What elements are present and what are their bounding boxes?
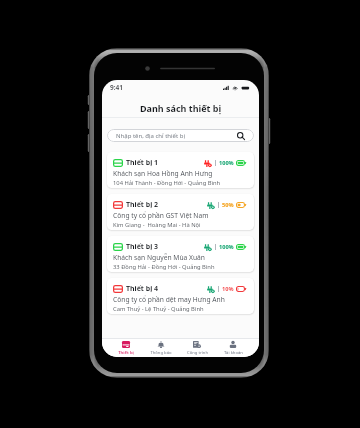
staticText: Khách sạn Nguyễn Mùa Xuân	[113, 253, 205, 262]
staticText: 50%	[222, 201, 234, 209]
staticText: Nhập tên, địa chỉ thiết bị	[116, 132, 185, 140]
staticText: 33 Đồng Hải - Đồng Hới - Quảng Bình	[113, 263, 215, 271]
staticText: Khách sạn Hoa Hồng Anh Hưng	[113, 169, 213, 178]
button[interactable]: Thiết bị 3	[107, 236, 254, 272]
button[interactable]: Thông báo	[143, 339, 179, 357]
button[interactable]: Nhập tên, địa chỉ thiết bị	[107, 129, 254, 142]
staticText: 104 Hải Thành - Đồng Hới - Quảng Bình	[113, 179, 221, 187]
staticText: 100%	[219, 159, 234, 167]
staticText: 100%	[219, 243, 234, 251]
staticText: Công ty cổ phần GST Việt Nam	[113, 211, 209, 220]
staticText: Tài khoản	[224, 350, 243, 356]
staticText: 9:41	[110, 83, 123, 92]
staticText: Thiết bị 3	[126, 242, 159, 252]
button[interactable]: Tài khoản	[215, 339, 251, 357]
button[interactable]: Thiết bị 2	[107, 194, 254, 230]
staticText: 10%	[222, 285, 234, 293]
button[interactable]: Thiết bị 1	[107, 152, 254, 188]
staticText: Cam Thuỷ - Lệ Thuỷ - Quảng Bình	[113, 305, 204, 313]
staticText: Công ty cổ phần dệt may Hưng Anh	[113, 295, 225, 304]
button[interactable]: Thiết bị	[108, 339, 143, 357]
staticText: Kim Giang - Hoàng Mai - Hà Nội	[113, 221, 201, 229]
staticText: Thiết bị 1	[126, 158, 159, 168]
button[interactable]: Công trình	[179, 339, 215, 357]
staticText: Thiết bị 2	[126, 200, 159, 210]
staticText: Danh sách thiết bị	[140, 102, 222, 114]
staticText: Thiết bị	[118, 350, 134, 356]
button[interactable]: Thiết bị 4	[107, 278, 254, 314]
staticText: Thiết bị 4	[126, 284, 159, 294]
other: Search	[237, 132, 245, 140]
staticText: Thông báo	[150, 350, 172, 356]
staticText: Công trình	[187, 350, 208, 356]
